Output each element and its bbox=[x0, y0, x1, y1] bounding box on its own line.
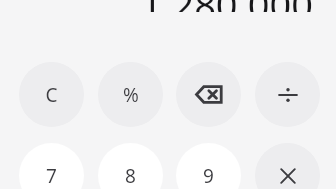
button[interactable]: 9 bbox=[176, 143, 241, 189]
staticText: 9 bbox=[203, 163, 214, 189]
button[interactable]: Multiply bbox=[255, 143, 320, 189]
button[interactable]: % bbox=[98, 62, 163, 127]
button[interactable]: Backspace bbox=[176, 62, 241, 127]
button[interactable]: 8 bbox=[98, 143, 163, 189]
button[interactable]: Divide bbox=[255, 62, 320, 127]
staticText: C bbox=[45, 82, 58, 108]
staticText: 1,280,000 bbox=[0, 0, 313, 12]
button[interactable]: 7 bbox=[19, 143, 84, 189]
staticText: 8 bbox=[125, 163, 136, 189]
staticText: 7 bbox=[46, 163, 57, 189]
staticText: % bbox=[123, 82, 139, 108]
button[interactable]: C bbox=[19, 62, 84, 127]
